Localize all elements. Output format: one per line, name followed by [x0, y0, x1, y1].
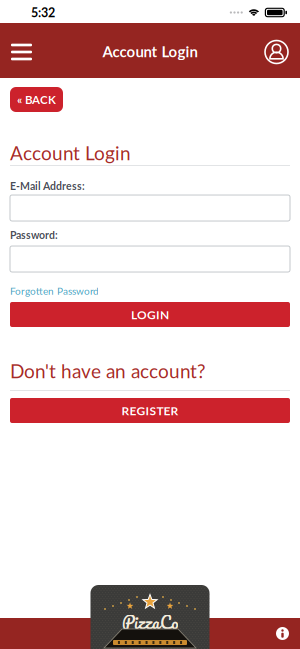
button[interactable] [276, 627, 300, 640]
staticText: Don't have an account? [10, 360, 206, 382]
staticText: « BACK [17, 93, 56, 106]
staticText: Account Login [102, 42, 197, 60]
staticText: 5:32 [31, 5, 55, 20]
staticText: E-Mail Address: [10, 180, 85, 192]
staticText: Account Login [10, 142, 131, 164]
button[interactable] [0, 41, 32, 60]
staticText: PizzaCo [122, 608, 178, 637]
staticText: Password: [10, 229, 58, 241]
staticText: Forgotten Password [10, 285, 99, 297]
staticText: LOGIN [131, 307, 169, 322]
staticText: REGISTER [121, 403, 178, 418]
button[interactable]: Forgotten Password [10, 285, 99, 297]
button[interactable]: LOGIN [0, 302, 300, 327]
button[interactable]: « BACK [10, 87, 63, 112]
button[interactable]: REGISTER [0, 398, 300, 423]
button[interactable] [264, 36, 300, 64]
